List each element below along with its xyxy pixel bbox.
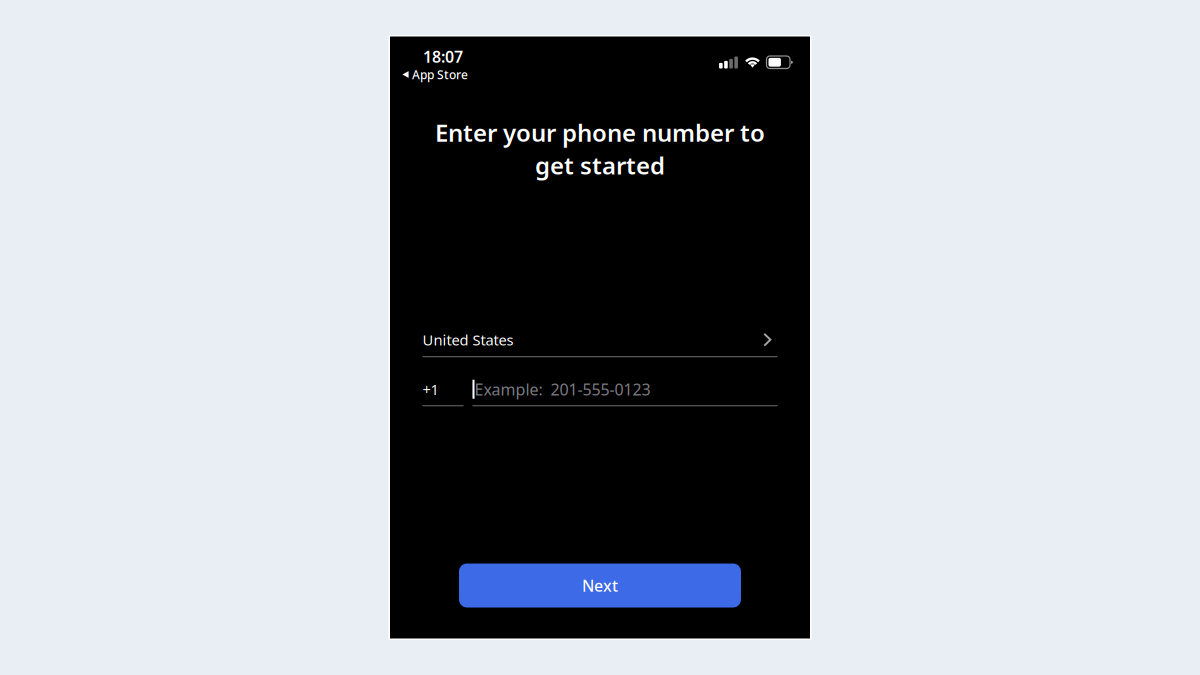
staticText: get started <box>535 149 665 181</box>
button[interactable]: Next <box>459 563 741 607</box>
staticText: Enter your phone number to <box>435 116 765 148</box>
button[interactable]: Country calling code, +1 <box>422 373 463 406</box>
staticText: Example: 201-555-0123 <box>474 379 650 400</box>
button[interactable]: Phone number, Example: 201-555-0123 <box>472 373 777 406</box>
button[interactable]: App Store <box>390 66 468 82</box>
staticText: 18:07 <box>423 46 463 67</box>
button[interactable]: United States <box>422 323 777 357</box>
staticText: Next <box>582 575 618 596</box>
staticText: United States <box>422 330 513 349</box>
staticText: +1 <box>422 379 438 399</box>
staticText: App Store <box>412 66 468 82</box>
